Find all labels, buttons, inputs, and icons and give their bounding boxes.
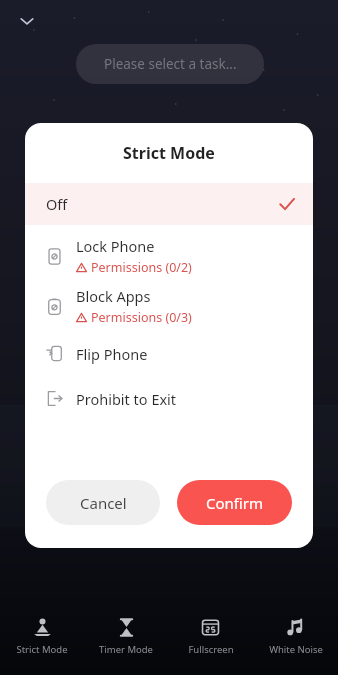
button[interactable]: Block Apps <box>25 281 313 331</box>
button[interactable]: Confirm <box>177 480 292 525</box>
button[interactable]: Collapse <box>10 4 44 38</box>
staticText: Strict Mode <box>16 643 68 656</box>
staticText: Please select a task... <box>104 55 237 73</box>
button[interactable]: Please select a task... <box>76 44 264 84</box>
staticText: Prohibit to Exit <box>76 389 177 409</box>
button[interactable]: Prohibit to Exit <box>25 376 313 421</box>
button[interactable]: Off <box>25 183 313 225</box>
button[interactable]: Flip Phone <box>25 331 313 376</box>
staticText: Block Apps <box>76 286 151 306</box>
staticText: Confirm <box>206 493 264 513</box>
button[interactable]: Fullscreen <box>168 618 253 656</box>
staticText: Lock Phone <box>76 236 155 256</box>
staticText: Permissions (0/3) <box>91 309 192 326</box>
button[interactable]: White Noise <box>253 618 338 656</box>
button[interactable]: Strict Mode <box>0 618 84 656</box>
staticText: Strict Mode <box>123 142 215 164</box>
staticText: Cancel <box>80 493 127 513</box>
staticText: White Noise <box>269 643 323 656</box>
staticText: Fullscreen <box>188 643 234 656</box>
button[interactable]: Lock Phone <box>25 231 313 281</box>
staticText: Timer Mode <box>99 643 153 656</box>
staticText: Off <box>46 194 68 214</box>
staticText: Permissions (0/2) <box>91 259 192 276</box>
staticText: Flip Phone <box>76 344 148 364</box>
button[interactable]: Cancel <box>46 480 160 525</box>
button[interactable]: Timer Mode <box>84 618 168 656</box>
